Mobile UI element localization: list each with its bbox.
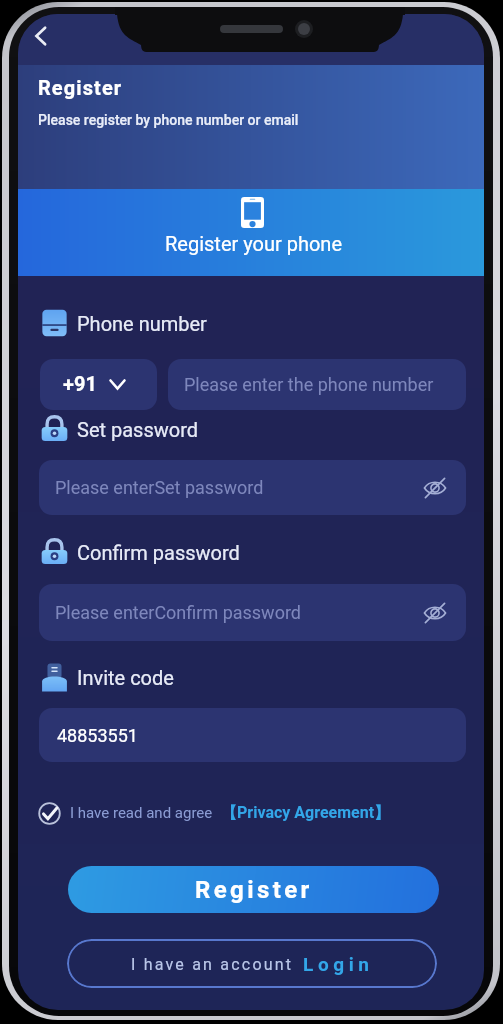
- staticText: Invite code: [77, 666, 174, 689]
- button[interactable]: Please enter the phone number: [168, 359, 466, 410]
- button[interactable]: I have read and agree: [38, 801, 391, 825]
- button[interactable]: +91: [40, 359, 157, 410]
- staticText: Please enter the phone number: [184, 374, 434, 395]
- staticText: +91: [63, 372, 97, 395]
- staticText: 48853551: [57, 725, 138, 746]
- button[interactable]: Show password: [420, 473, 450, 503]
- staticText: Phone number: [77, 312, 207, 335]
- staticText: 【Privacy Agreement】: [221, 803, 391, 823]
- button[interactable]: 48853551: [39, 708, 466, 762]
- staticText: I have read and agree: [70, 804, 213, 822]
- button[interactable]: Please enterSet password: [39, 460, 466, 515]
- staticText: Please enterConfirm password: [55, 602, 301, 623]
- staticText: Please register by phone number or email: [38, 112, 299, 128]
- staticText: I have an account: [131, 955, 294, 974]
- staticText: Please enterSet password: [55, 477, 264, 498]
- staticText: Login: [303, 953, 374, 975]
- staticText: Register: [38, 76, 123, 99]
- staticText: Register your phone: [165, 232, 343, 255]
- button[interactable]: I have an account: [67, 939, 437, 988]
- button[interactable]: Show password: [420, 598, 450, 628]
- button[interactable]: Register your phone: [18, 189, 484, 276]
- button[interactable]: Back: [22, 18, 58, 54]
- button[interactable]: Register: [68, 866, 439, 913]
- staticText: Register: [195, 876, 313, 904]
- staticText: Confirm password: [77, 541, 240, 564]
- staticText: Set password: [77, 418, 199, 441]
- button[interactable]: Please enterConfirm password: [39, 584, 466, 641]
